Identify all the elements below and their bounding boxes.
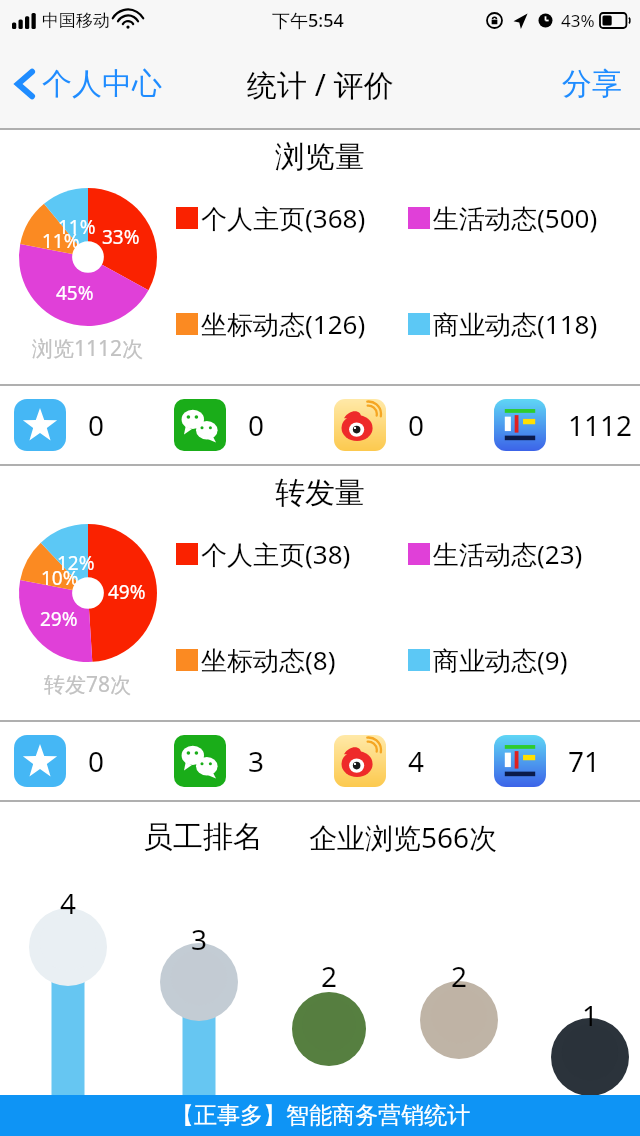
staticText: 45% xyxy=(56,280,94,306)
button[interactable]: 微博 xyxy=(320,399,480,451)
staticText: 生活动态(500) xyxy=(433,200,598,236)
button[interactable]: 分享 xyxy=(562,65,622,103)
staticText: 11% xyxy=(42,228,80,254)
other: QQ空间 xyxy=(14,399,66,451)
button[interactable]: 返回 xyxy=(14,65,162,103)
other: 微博 xyxy=(334,399,386,451)
staticText: 个人主页(38) xyxy=(201,536,351,572)
staticText: 0 xyxy=(88,742,105,780)
staticText: 43% xyxy=(561,9,595,32)
staticText: 2 xyxy=(451,957,468,995)
staticText: 转发78次 xyxy=(44,670,132,699)
staticText: 浏览1112次 xyxy=(32,334,144,363)
staticText: 浏览量 xyxy=(0,138,640,176)
staticText: 11% xyxy=(58,214,96,240)
staticText: 坐标动态(8) xyxy=(201,642,336,678)
staticText: 中国移动 xyxy=(42,10,110,31)
staticText: 4 xyxy=(60,884,77,922)
button[interactable]: 微信 xyxy=(160,735,320,787)
staticText: 10% xyxy=(41,565,79,591)
staticText: 1 xyxy=(582,996,599,1034)
staticText: 下午5:54 xyxy=(272,8,344,33)
staticText: 33% xyxy=(102,224,140,250)
other: QQ空间 xyxy=(14,735,66,787)
button[interactable]: 资讯 xyxy=(480,399,640,451)
staticText: 49% xyxy=(108,579,146,605)
button[interactable]: QQ空间 xyxy=(0,399,160,451)
other: 微信 xyxy=(174,399,226,451)
staticText: 0 xyxy=(88,406,105,444)
other: 微信 xyxy=(174,735,226,787)
other: 微博 xyxy=(334,735,386,787)
staticText: 坐标动态(126) xyxy=(201,306,366,342)
staticText: 分享 xyxy=(562,65,622,103)
staticText: 生活动态(23) xyxy=(433,536,583,572)
staticText: 71 xyxy=(568,742,601,780)
staticText: 企业浏览566次 xyxy=(309,818,498,856)
button[interactable]: 微信 xyxy=(160,399,320,451)
staticText: 1112 xyxy=(568,406,633,444)
button[interactable]: 【正事多】智能商务营销统计 xyxy=(0,1095,640,1136)
staticText: 3 xyxy=(191,920,208,958)
button[interactable]: 微博 xyxy=(320,735,480,787)
other: 资讯 xyxy=(494,735,546,787)
button[interactable]: 资讯 xyxy=(480,735,640,787)
staticText: 0 xyxy=(248,406,265,444)
other: 返回 xyxy=(14,67,36,101)
staticText: 商业动态(118) xyxy=(433,306,598,342)
staticText: 0 xyxy=(408,406,425,444)
other: 资讯 xyxy=(494,399,546,451)
staticText: 3 xyxy=(248,742,265,780)
staticText: 【正事多】智能商务营销统计 xyxy=(171,1101,470,1130)
staticText: 转发量 xyxy=(0,474,640,512)
staticText: 个人主页(368) xyxy=(201,200,366,236)
staticText: 4 xyxy=(408,742,425,780)
staticText: 商业动态(9) xyxy=(433,642,568,678)
staticText: 统计 / 评价 xyxy=(247,64,394,105)
button[interactable]: QQ空间 xyxy=(0,735,160,787)
staticText: 员工排名 xyxy=(143,818,263,856)
staticText: 12% xyxy=(57,550,95,576)
staticText: 29% xyxy=(40,606,78,632)
staticText: 个人中心 xyxy=(42,65,162,103)
staticText: 2 xyxy=(321,957,338,995)
